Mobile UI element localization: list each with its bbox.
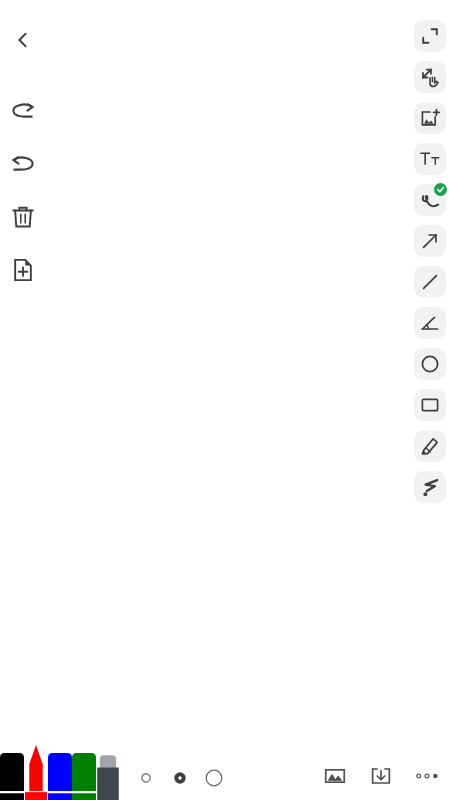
button[interactable]: Back [1,18,45,62]
button[interactable]: Redo [1,142,45,186]
button[interactable]: Pan and zoom [414,61,446,93]
button[interactable]: Freehand [414,184,446,216]
button[interactable]: Insert image [414,102,446,134]
button[interactable]: Green pen [72,744,96,800]
button[interactable]: Thick stroke [199,763,229,793]
button[interactable]: Black pen [0,744,24,800]
button[interactable]: More options [412,761,442,791]
button[interactable]: Arrow [414,225,446,257]
button[interactable]: New page [1,248,45,292]
button[interactable]: Line [414,266,446,298]
button[interactable]: Undo [1,89,45,133]
button[interactable]: Thin stroke [131,763,161,793]
button[interactable]: Highlighter [414,430,446,462]
button[interactable]: Medium stroke [165,763,195,793]
button[interactable]: Clear page [1,195,45,239]
button[interactable]: Gallery [320,761,350,791]
button[interactable]: Save [366,761,396,791]
button[interactable]: Red pen [24,744,48,800]
button[interactable]: Eraser [96,744,120,800]
button[interactable]: Text [414,143,446,175]
button[interactable]: Blue pen [48,744,72,800]
button[interactable]: Circle [414,348,446,380]
button[interactable]: Rectangle [414,389,446,421]
button[interactable]: Fit to screen [414,20,446,52]
button[interactable]: Angle [414,307,446,339]
button[interactable]: Lasso select [414,471,446,503]
